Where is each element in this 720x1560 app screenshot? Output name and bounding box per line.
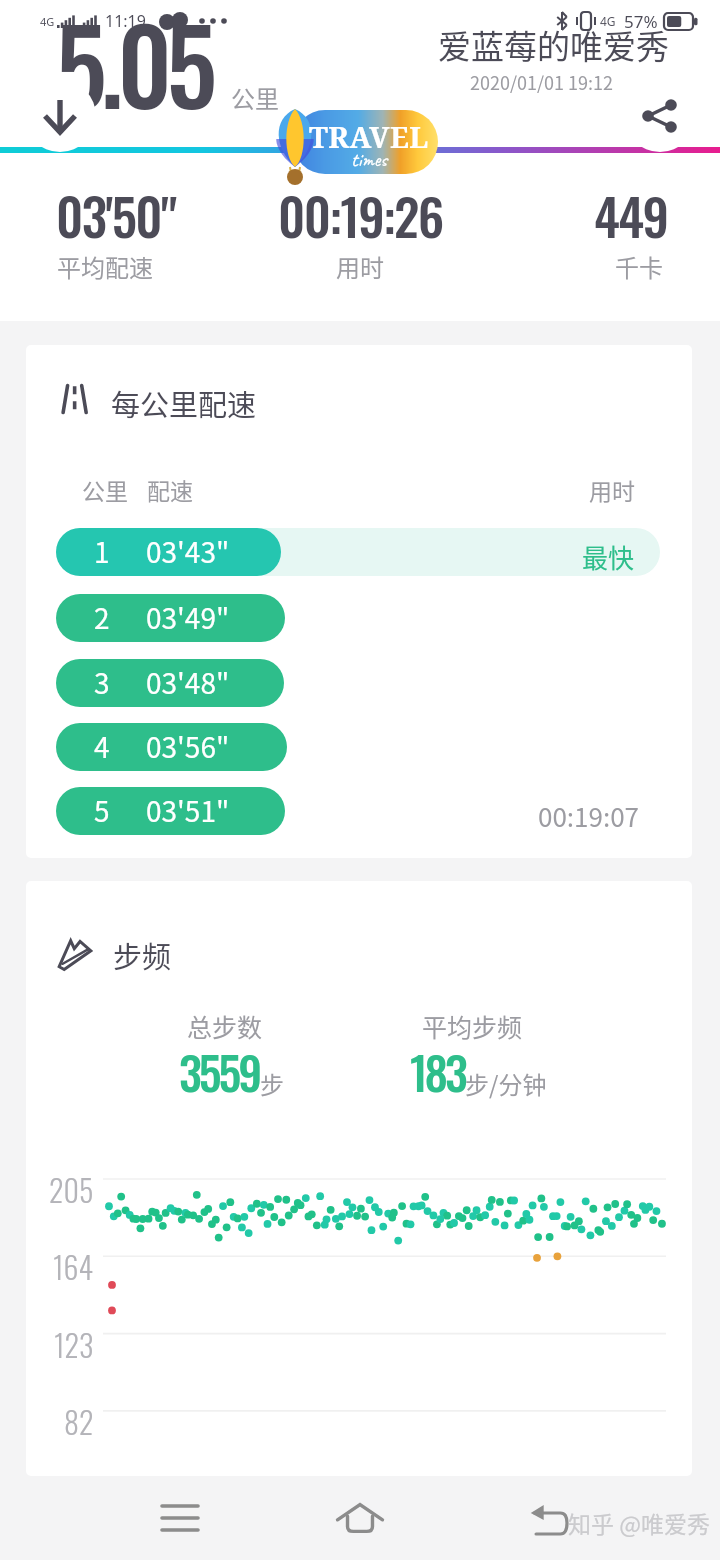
staticText: 82 (64, 1399, 94, 1435)
button[interactable]: Back (489, 1481, 609, 1560)
staticText: 5 (94, 790, 110, 831)
staticText: 183 (410, 1037, 465, 1105)
staticText: 03'56" (146, 726, 230, 767)
staticText: 2 (94, 597, 110, 638)
staticText: 3 (94, 662, 110, 703)
staticText: 00:19:07 (538, 797, 640, 835)
staticText: 4G (600, 13, 616, 29)
staticText: 11:19 (105, 10, 146, 32)
staticText: 03'43" (146, 531, 230, 572)
staticText: 步频 (113, 934, 172, 976)
button[interactable]: 1 (56, 528, 660, 576)
staticText: 总步数 (187, 1008, 263, 1044)
staticText: 1 (94, 531, 110, 572)
staticText: 3559 (179, 1037, 260, 1105)
staticText: 57% (624, 10, 658, 33)
staticText: 2020/01/01 19:12 (470, 69, 614, 95)
staticText: times (351, 147, 388, 172)
staticText: 公里 (82, 473, 128, 506)
button[interactable]: 5 (56, 787, 660, 835)
staticText: 步/分钟 (465, 1066, 547, 1101)
staticText: 4G (40, 14, 55, 29)
staticText: 爱蓝莓的唯爱秀 (438, 21, 669, 69)
button[interactable]: Share (624, 80, 696, 152)
button[interactable]: 4 (56, 723, 660, 771)
button[interactable]: 3 (56, 659, 660, 707)
staticText: 5.05 (56, 0, 211, 139)
staticText: 平均步频 (422, 1008, 523, 1044)
staticText: 449 (594, 177, 668, 253)
staticText: 步 (260, 1066, 284, 1101)
button[interactable]: 2 (56, 594, 660, 642)
staticText: 千卡 (615, 249, 663, 284)
button[interactable]: Download (24, 80, 96, 152)
staticText: 164 (53, 1244, 94, 1280)
staticText: 配速 (147, 473, 193, 506)
staticText: 知乎 @唯爱秀 (568, 1506, 710, 1539)
staticText: 每公里配速 (111, 382, 257, 424)
staticText: 03'49" (146, 597, 230, 638)
staticText: 最快 (582, 538, 635, 576)
staticText: 205 (49, 1167, 94, 1203)
staticText: 03'50" (56, 177, 176, 253)
button[interactable]: Recent apps (120, 1476, 240, 1560)
button[interactable]: Home (300, 1476, 420, 1560)
staticText: 03'48" (146, 662, 230, 703)
staticText: 公里 (231, 80, 279, 115)
staticText: TRAVEL (309, 117, 429, 156)
staticText: 123 (54, 1322, 94, 1358)
staticText: 00:19:26 (278, 177, 443, 253)
staticText: 4 (94, 726, 110, 767)
staticText: 03'51" (146, 790, 230, 831)
staticText: 用时 (589, 473, 635, 506)
staticText: 平均配速 (57, 249, 153, 284)
staticText: 用时 (336, 249, 384, 284)
